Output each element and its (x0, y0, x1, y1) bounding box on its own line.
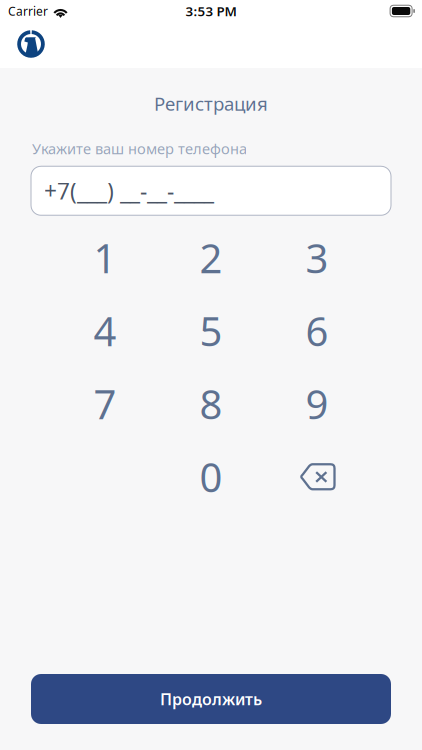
staticText: Укажите ваш номер телефона (32, 139, 247, 158)
button[interactable]: 6 (264, 294, 370, 367)
staticText: 9 (305, 377, 328, 430)
button[interactable]: 1 (52, 221, 158, 294)
staticText: 8 (199, 377, 222, 430)
button[interactable]: 0 (158, 440, 264, 513)
staticText: 1 (93, 231, 116, 284)
staticText: 2 (199, 231, 222, 284)
staticText: 5 (199, 304, 222, 357)
button[interactable]: Home (0, 22, 55, 68)
button[interactable]: 7 (52, 367, 158, 440)
staticText: 4 (93, 304, 116, 357)
button[interactable]: 2 (158, 221, 264, 294)
button[interactable]: 5 (158, 294, 264, 367)
staticText: +7(___) __-__-____ (44, 176, 214, 206)
staticText: 7 (93, 377, 116, 430)
button[interactable]: 8 (158, 367, 264, 440)
button[interactable]: Delete (264, 440, 370, 513)
staticText: Продолжить (160, 688, 262, 710)
button[interactable]: 3 (264, 221, 370, 294)
staticText: Carrier (8, 3, 48, 19)
staticText: 0 (199, 450, 222, 503)
staticText: Регистрация (154, 91, 268, 116)
staticText: 6 (305, 304, 328, 357)
button[interactable]: 4 (52, 294, 158, 367)
button[interactable]: 9 (264, 367, 370, 440)
button[interactable]: Продолжить (31, 674, 391, 724)
staticText: 3 (305, 231, 328, 284)
staticText: 3:53 PM (185, 2, 236, 20)
